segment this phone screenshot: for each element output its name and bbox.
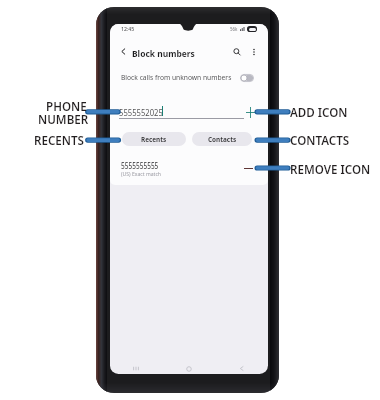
- button[interactable]: [110, 155, 268, 183]
- button[interactable]: Back: [117, 45, 130, 58]
- button[interactable]: Search: [230, 45, 243, 58]
- staticText: CONTACTS: [290, 133, 350, 149]
- staticText: RECENTS: [34, 133, 84, 149]
- staticText: Block numbers: [132, 47, 195, 60]
- button[interactable]: More options: [247, 45, 260, 58]
- staticText: NUMBER: [38, 112, 89, 128]
- staticText: Contacts: [208, 135, 237, 144]
- staticText: 12:45: [121, 25, 135, 32]
- button[interactable]: Recents: [122, 132, 186, 146]
- button[interactable]: Recent apps: [110, 363, 162, 374]
- staticText: Recents: [141, 135, 167, 144]
- staticText: (US) Exact match: [121, 170, 161, 178]
- button[interactable]: Contacts: [192, 132, 252, 146]
- button[interactable]: Add number: [243, 105, 257, 119]
- staticText: 56k: [230, 26, 238, 32]
- staticText: ADD ICON: [290, 105, 348, 121]
- button[interactable]: Remove number: [242, 162, 255, 175]
- staticText: 5555555555: [121, 160, 159, 172]
- staticText: Block calls from unknown numbers: [121, 73, 232, 82]
- button[interactable]: [110, 64, 268, 91]
- staticText: REMOVE ICON: [290, 162, 371, 178]
- button[interactable]: Back: [215, 363, 268, 374]
- button[interactable]: Home: [162, 363, 215, 374]
- staticText: PHONE: [46, 99, 87, 115]
- button[interactable]: Block calls from unknown numbers toggle: [240, 74, 254, 82]
- staticText: 5555552025: [119, 106, 163, 119]
